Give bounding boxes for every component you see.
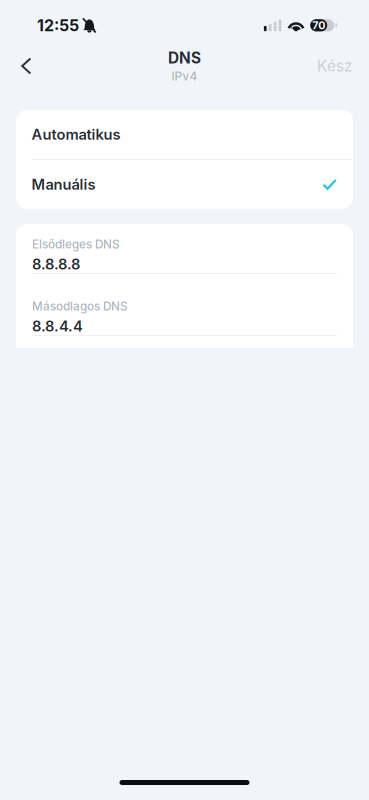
staticText: 8.8.4.4 [32, 317, 83, 335]
button[interactable]: Back [0, 44, 48, 88]
staticText: IPv4 [171, 69, 197, 83]
button[interactable]: Elsődleges DNS [16, 224, 353, 286]
staticText: 12:55 [37, 16, 79, 35]
staticText: Kész [317, 57, 352, 75]
button[interactable]: Másodlagos DNS [16, 286, 353, 348]
staticText: Manuális [31, 176, 95, 193]
button[interactable]: Kész [301, 44, 369, 88]
button[interactable]: Automatikus [16, 110, 353, 159]
staticText: Másodlagos DNS [32, 299, 128, 313]
button[interactable]: Manuális [16, 160, 353, 209]
staticText: Elsődleges DNS [32, 237, 120, 251]
staticText: DNS [168, 49, 201, 67]
staticText: 8.8.8.8 [32, 255, 80, 273]
staticText: 70 [312, 19, 325, 32]
staticText: Automatikus [31, 126, 120, 143]
